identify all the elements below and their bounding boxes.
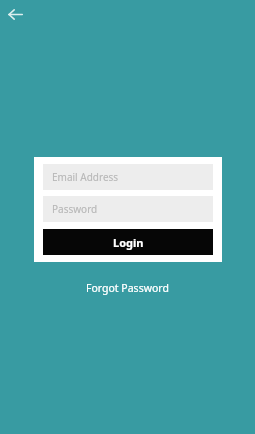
button[interactable]: Forgot Password [76, 278, 179, 298]
button[interactable]: Email Address [43, 164, 213, 190]
staticText: Forgot Password [86, 281, 169, 295]
button[interactable]: Login [43, 229, 213, 255]
staticText: Email Address [52, 170, 119, 184]
staticText: Password [52, 202, 98, 216]
button[interactable]: Password [43, 196, 213, 222]
staticText: Login [113, 235, 144, 250]
button[interactable]: Back [4, 3, 27, 26]
